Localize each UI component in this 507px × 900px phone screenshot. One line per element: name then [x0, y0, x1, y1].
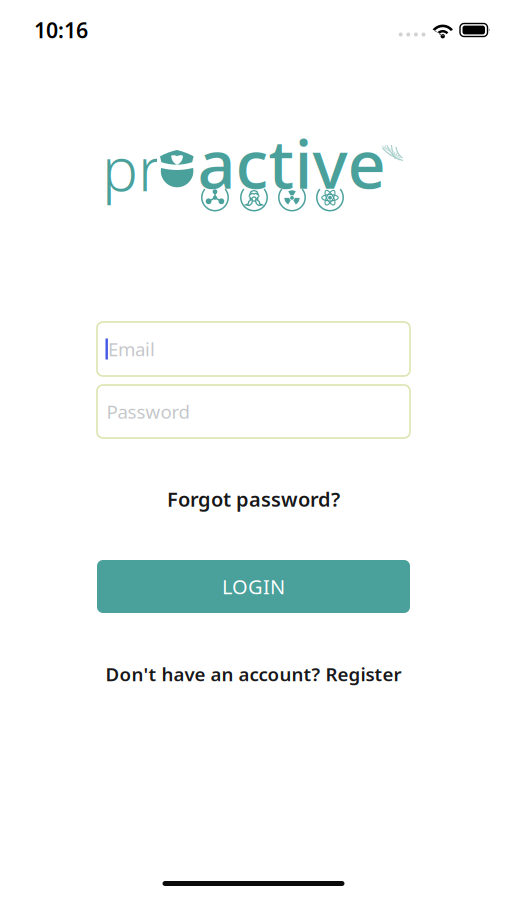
- button[interactable]: Password: [97, 385, 410, 438]
- staticText: Email: [108, 337, 155, 361]
- staticText: Password: [106, 399, 189, 424]
- button[interactable]: Email: [97, 322, 410, 376]
- staticText: active: [197, 119, 385, 207]
- button[interactable]: LOGIN: [97, 560, 410, 613]
- staticText: Don't have an account? Register: [105, 662, 401, 686]
- staticText: Forgot password?: [167, 486, 340, 512]
- staticText: 10:16: [34, 16, 88, 44]
- button[interactable]: Don't have an account? Register: [53, 657, 453, 691]
- button[interactable]: Forgot password?: [133, 482, 373, 516]
- staticText: LOGIN: [222, 573, 285, 600]
- staticText: pr: [102, 128, 162, 208]
